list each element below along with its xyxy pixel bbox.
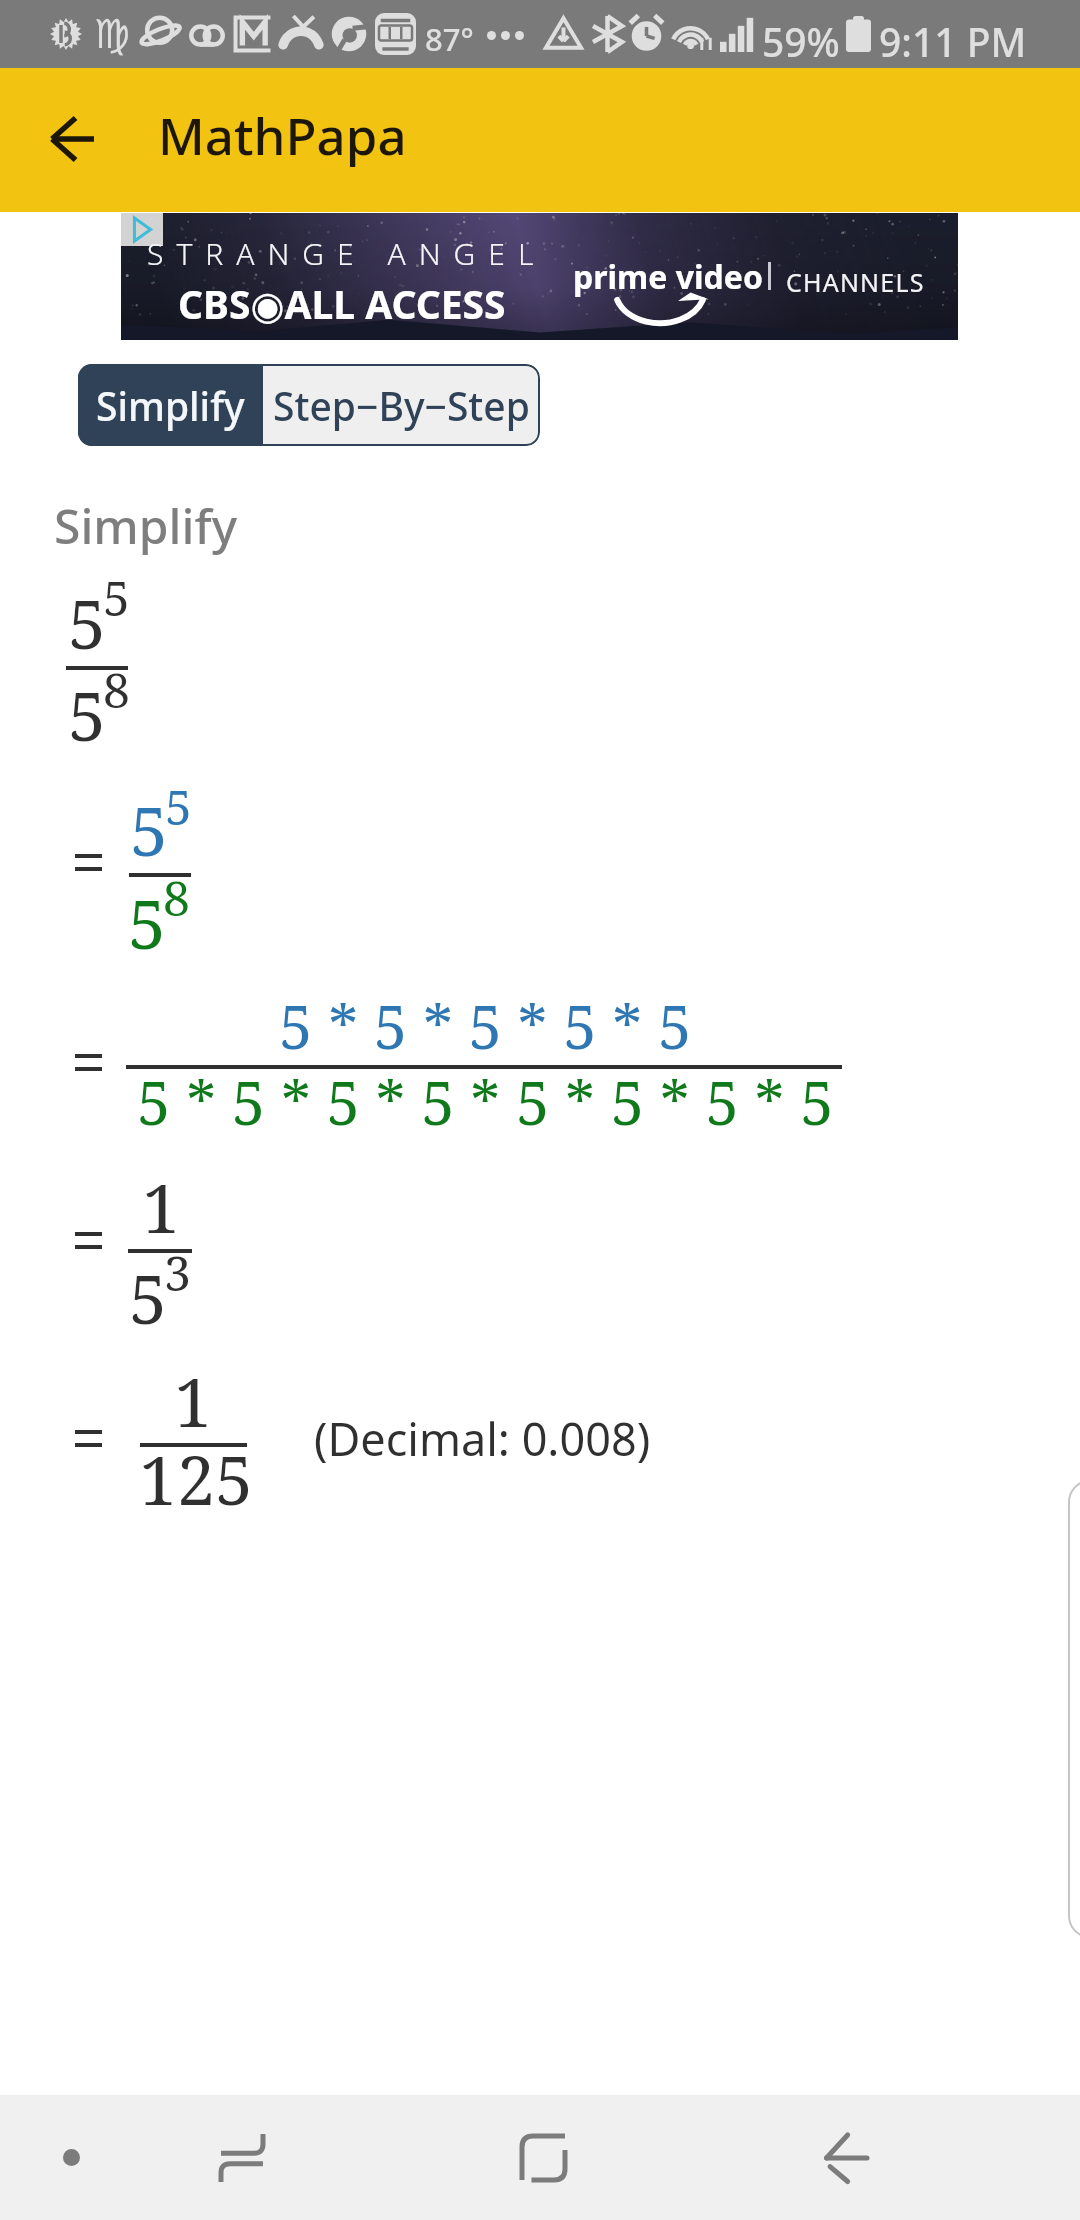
staticText: CBS◉ALL ACCESS [178, 277, 506, 330]
staticText: MathPapa [158, 100, 407, 169]
staticText: (Decimal: 0.008) [314, 1408, 651, 1469]
staticText: Step−By−Step [273, 379, 530, 432]
button[interactable]: Advertisement: Strange Angel on CBS All … [121, 213, 958, 340]
staticText: 5 * 5 * 5 * 5 * 5 * 5 * 5 * 5 [137, 1061, 834, 1143]
staticText: 1 [142, 1160, 181, 1253]
staticText: 125 [139, 1432, 254, 1525]
button[interactable]: Simplify [78, 364, 263, 446]
staticText: 3 [164, 1240, 191, 1305]
staticText: Simplify [96, 379, 245, 432]
staticText: 5 [68, 576, 107, 669]
staticText: 5 [128, 876, 167, 969]
staticText: 9:11 PM [879, 15, 1027, 68]
staticText: 8 [103, 657, 130, 722]
staticText: 87° [425, 18, 474, 60]
staticText: 5 * 5 * 5 * 5 * 5 [279, 985, 692, 1067]
staticText: 5 [103, 565, 130, 630]
staticText: 5 [68, 668, 107, 761]
button[interactable]: Notification [6, 2095, 136, 2220]
button[interactable]: Recent apps [175, 2095, 309, 2220]
staticText: prime video [573, 255, 763, 299]
button[interactable]: Back [778, 2095, 912, 2220]
staticText: 8 [163, 865, 190, 930]
button[interactable]: Navigate up [20, 68, 126, 210]
button[interactable]: Step−By−Step [263, 364, 540, 446]
staticText: 5 [165, 774, 192, 839]
staticText: 5 [129, 1251, 168, 1344]
button[interactable]: Home [476, 2095, 610, 2220]
staticText: 59% [762, 15, 840, 68]
staticText: ♍ [94, 11, 130, 58]
staticText: STRANGE ANGEL [147, 233, 547, 274]
staticText: 1 [174, 1354, 213, 1447]
staticText: 5 [130, 783, 169, 876]
staticText: Simplify [54, 493, 237, 558]
staticText: CHANNELS [786, 265, 925, 299]
